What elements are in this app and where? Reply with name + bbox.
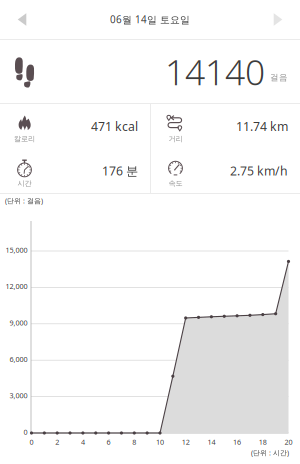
staticText: 6,000 <box>9 354 27 364</box>
staticText: 11.74 km <box>236 118 288 135</box>
staticText: 시간 <box>17 179 31 188</box>
staticText: 속도 <box>168 179 182 188</box>
staticText: (단위 : 시간) <box>251 448 289 457</box>
staticText: (단위 : 걸음) <box>5 196 43 205</box>
staticText: 0 <box>29 437 33 447</box>
staticText: 176 분 <box>102 162 138 179</box>
staticText: 0 <box>23 427 27 437</box>
staticText: 2.75 km/h <box>230 162 288 179</box>
staticText: 칼로리 <box>14 134 35 143</box>
staticText: 거리 <box>168 134 182 143</box>
staticText: 3,000 <box>9 391 27 400</box>
staticText: 12 <box>182 437 190 447</box>
staticText: 8 <box>132 437 136 447</box>
staticText: 14140 <box>165 47 265 95</box>
staticText: 4 <box>81 437 85 447</box>
staticText: 15,000 <box>5 245 27 255</box>
staticText: 16 <box>233 437 241 447</box>
staticText: 12,000 <box>5 281 27 291</box>
staticText: 20 <box>284 437 292 447</box>
staticText: 걸음 <box>270 72 288 83</box>
staticText: 9,000 <box>9 318 27 328</box>
staticText: 471 kcal <box>91 118 138 135</box>
staticText: 06월 14일 토요일 <box>110 13 190 26</box>
button[interactable]: Previous day <box>0 0 44 39</box>
staticText: 10 <box>156 437 164 447</box>
staticText: 2 <box>55 437 59 447</box>
staticText: 18 <box>259 437 267 447</box>
staticText: 14 <box>207 437 215 447</box>
staticText: 6 <box>107 437 111 447</box>
button[interactable]: Next day <box>256 0 300 39</box>
